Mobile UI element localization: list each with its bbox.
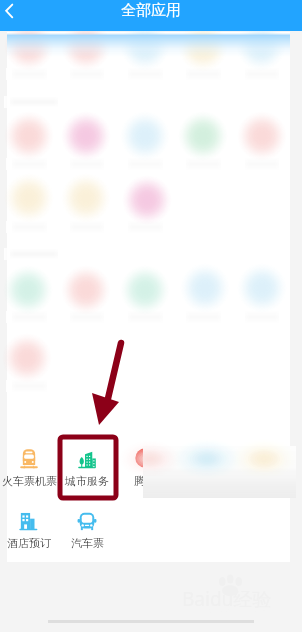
button[interactable]: 腾讯 (116, 434, 174, 496)
button[interactable]: 汽车票 (58, 496, 116, 558)
button[interactable]: 城市服务 (58, 434, 116, 496)
staticText: 火车票机票 (2, 474, 57, 488)
button[interactable]: 火车票机票 (0, 434, 58, 496)
button[interactable]: Back (0, 1, 30, 31)
staticText: 全部应用 (121, 1, 181, 20)
staticText: 城市服务 (65, 474, 109, 488)
staticText: 腾讯 (134, 474, 156, 488)
staticText: 汽车票 (71, 536, 104, 550)
button[interactable]: 酒店预订 (0, 496, 58, 558)
staticText: 酒店预订 (7, 536, 51, 550)
